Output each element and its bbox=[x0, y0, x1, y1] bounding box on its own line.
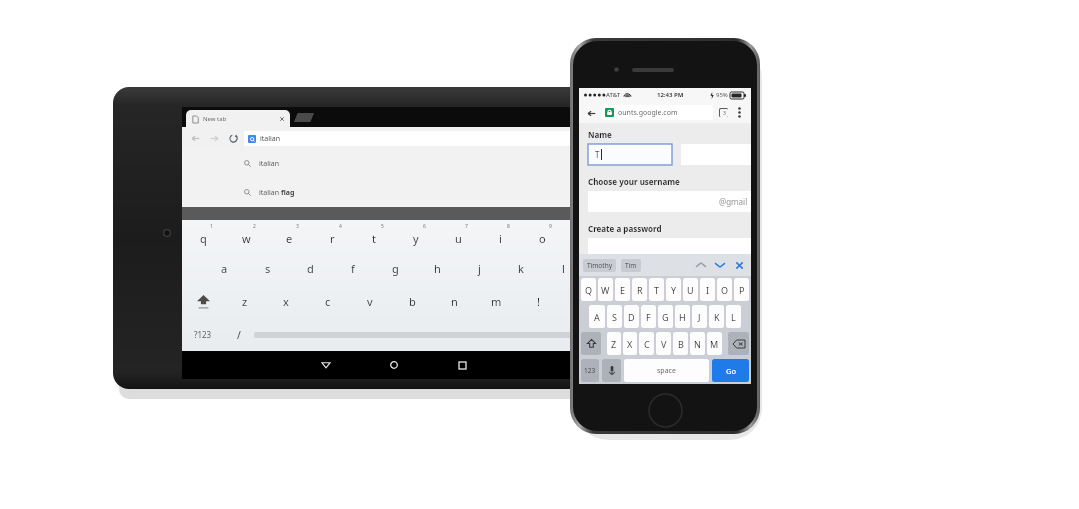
staticText: L bbox=[731, 311, 736, 323]
button[interactable]: 5 bbox=[353, 220, 395, 252]
button[interactable]: Space bbox=[254, 328, 577, 341]
button[interactable]: U bbox=[683, 278, 698, 301]
button[interactable]: k bbox=[500, 252, 542, 285]
button[interactable]: ounts.google.com bbox=[602, 105, 713, 120]
button[interactable]: 6 bbox=[395, 220, 437, 252]
button[interactable]: c bbox=[307, 285, 349, 318]
button[interactable]: M bbox=[707, 332, 722, 355]
button[interactable]: b bbox=[391, 285, 433, 318]
button[interactable]: L bbox=[726, 305, 741, 328]
button[interactable]: G bbox=[658, 305, 673, 328]
button[interactable]: 4 bbox=[311, 220, 353, 252]
button[interactable]: f bbox=[332, 252, 374, 285]
button[interactable]: 7 bbox=[437, 220, 479, 252]
button[interactable]: T bbox=[649, 278, 664, 301]
button[interactable]: Backspace bbox=[728, 332, 749, 355]
button[interactable]: Shift bbox=[182, 285, 224, 318]
button[interactable]: @gmail bbox=[588, 191, 751, 212]
button[interactable]: ? bbox=[559, 285, 601, 318]
button[interactable]: 9 bbox=[521, 220, 563, 252]
button[interactable]: K bbox=[709, 305, 724, 328]
button[interactable]: Back bbox=[311, 351, 341, 379]
button[interactable]: Y bbox=[666, 278, 681, 301]
button[interactable]: x bbox=[265, 285, 307, 318]
button[interactable]: Tabs bbox=[717, 106, 730, 119]
button[interactable]: Forward bbox=[207, 131, 221, 145]
button[interactable]: space bbox=[624, 359, 709, 382]
button[interactable]: New tab bbox=[294, 113, 314, 122]
button[interactable]: / bbox=[224, 318, 254, 351]
button[interactable]: R bbox=[632, 278, 647, 301]
button[interactable]: ?123 bbox=[182, 318, 224, 351]
button[interactable]: g bbox=[374, 252, 416, 285]
button[interactable]: Back bbox=[188, 131, 202, 145]
button[interactable]: O bbox=[717, 278, 732, 301]
button[interactable]: v bbox=[349, 285, 391, 318]
staticText: c bbox=[325, 294, 331, 309]
button[interactable]: Q bbox=[581, 278, 596, 301]
staticText: space bbox=[657, 366, 676, 376]
staticText: X bbox=[627, 338, 633, 350]
button[interactable]: More options bbox=[733, 106, 746, 119]
button[interactable]: N bbox=[690, 332, 705, 355]
button[interactable]: Bookmark bbox=[589, 132, 601, 144]
button[interactable]: a bbox=[203, 252, 246, 285]
button[interactable]: New tab bbox=[186, 110, 290, 127]
button[interactable]: P bbox=[734, 278, 749, 301]
button[interactable]: s bbox=[246, 252, 289, 285]
staticText: / bbox=[237, 328, 241, 342]
button[interactable]: E bbox=[615, 278, 630, 301]
staticText: 95% bbox=[716, 91, 728, 99]
button[interactable]: Recents bbox=[447, 351, 477, 379]
staticText: w bbox=[242, 231, 251, 246]
button[interactable]: D bbox=[624, 305, 639, 328]
button[interactable]: I bbox=[700, 278, 715, 301]
button[interactable]: ! bbox=[517, 285, 559, 318]
button[interactable]: 123 bbox=[581, 359, 599, 382]
button[interactable]: Close keyboard bbox=[731, 257, 747, 273]
button[interactable]: h bbox=[416, 252, 458, 285]
button[interactable]: W bbox=[598, 278, 613, 301]
button[interactable]: m bbox=[475, 285, 517, 318]
button[interactable]: F bbox=[641, 305, 656, 328]
button[interactable]: 3 bbox=[268, 220, 311, 252]
staticText: 6 bbox=[423, 223, 426, 230]
staticText: e bbox=[286, 231, 293, 246]
button[interactable]: Back bbox=[584, 106, 598, 120]
button[interactable]: J bbox=[692, 305, 707, 328]
button[interactable]: . bbox=[577, 318, 605, 351]
button[interactable]: Dictate bbox=[602, 359, 621, 382]
button[interactable]: n bbox=[433, 285, 475, 318]
button[interactable]: Timothy bbox=[583, 259, 616, 272]
button[interactable]: 1 bbox=[182, 220, 225, 252]
button[interactable]: italian bbox=[244, 131, 585, 146]
button[interactable]: j bbox=[458, 252, 500, 285]
button[interactable]: V bbox=[656, 332, 671, 355]
button[interactable]: italian bbox=[182, 149, 605, 178]
staticText: E bbox=[620, 284, 626, 296]
button[interactable]: z bbox=[224, 285, 265, 318]
button[interactable]: Go bbox=[712, 359, 749, 382]
button[interactable]: A bbox=[589, 305, 605, 328]
button[interactable]: Shift bbox=[581, 332, 601, 355]
button[interactable]: T bbox=[588, 144, 672, 165]
button[interactable]: Next bbox=[712, 257, 728, 273]
button[interactable]: B bbox=[673, 332, 688, 355]
button[interactable]: Home bbox=[379, 351, 409, 379]
button[interactable]: Z bbox=[607, 332, 621, 355]
button[interactable]: 8 bbox=[479, 220, 521, 252]
button[interactable]: X bbox=[623, 332, 637, 355]
button[interactable]: 2 bbox=[225, 220, 268, 252]
button[interactable]: l bbox=[542, 252, 584, 285]
button[interactable]: S bbox=[607, 305, 622, 328]
button[interactable]: C bbox=[639, 332, 654, 355]
button[interactable]: 0 bbox=[563, 220, 605, 252]
button[interactable]: Tim bbox=[621, 259, 641, 272]
button[interactable]: italian bbox=[182, 178, 605, 207]
button[interactable]: Reload bbox=[226, 131, 240, 145]
button[interactable]: d bbox=[289, 252, 332, 285]
button[interactable]: Previous bbox=[693, 257, 709, 273]
button[interactable]: H bbox=[675, 305, 690, 328]
